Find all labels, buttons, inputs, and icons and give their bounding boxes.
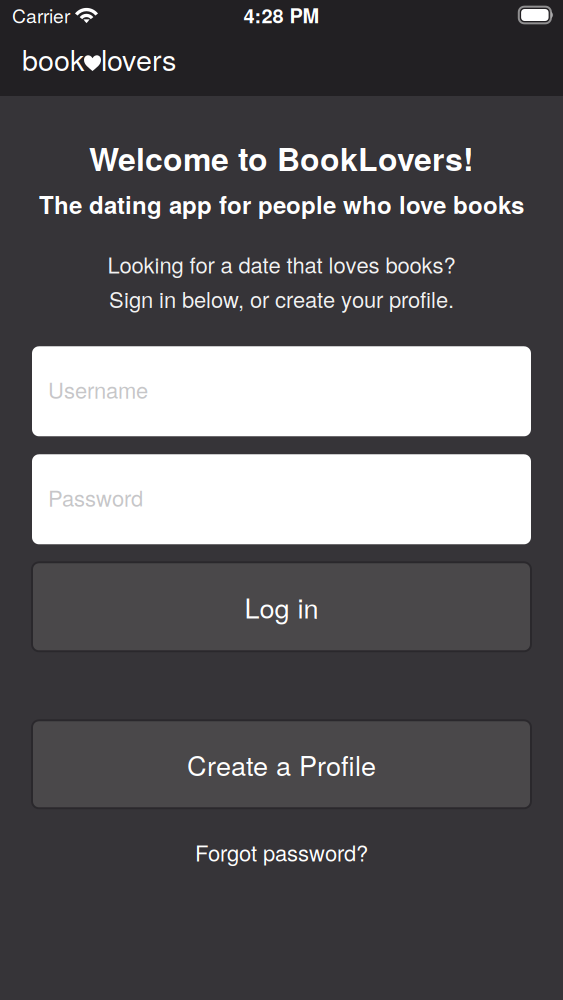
staticText: Sign in below, or create your profile. xyxy=(109,283,454,314)
staticText: Password xyxy=(48,481,143,513)
button[interactable]: Username xyxy=(32,346,531,436)
button[interactable]: Log in xyxy=(32,562,531,651)
staticText: book xyxy=(22,38,84,79)
staticText: Username xyxy=(48,373,148,405)
staticText: Looking for a date that loves books? xyxy=(107,248,455,280)
staticText: The dating app for people who love books xyxy=(39,187,524,221)
staticText: lovers xyxy=(101,38,176,79)
staticText: Log in xyxy=(244,587,318,626)
staticText: 4:28 PM xyxy=(243,1,319,29)
button[interactable]: Forgot password? xyxy=(185,808,378,880)
button[interactable]: Create a Profile xyxy=(32,720,531,808)
staticText: Carrier xyxy=(12,1,70,29)
button[interactable]: Password xyxy=(32,454,531,544)
staticText: Forgot password? xyxy=(195,836,368,868)
button[interactable]: BookLovers xyxy=(22,32,176,85)
staticText: Welcome to BookLovers! xyxy=(89,135,474,181)
staticText: Create a Profile xyxy=(187,745,376,784)
